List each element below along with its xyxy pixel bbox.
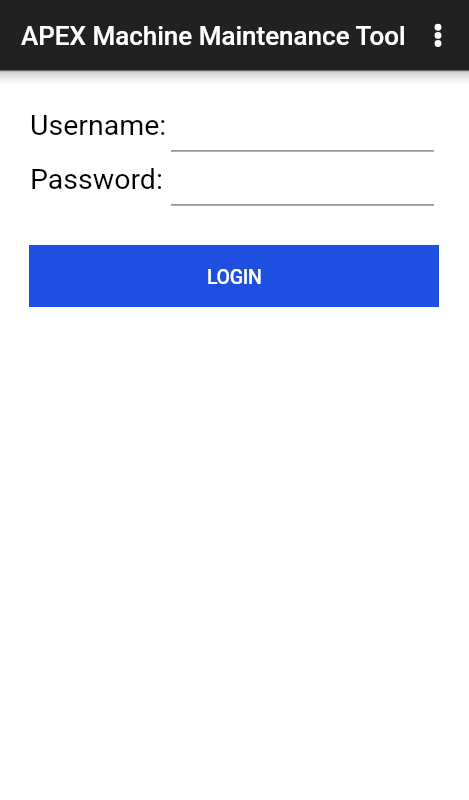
staticText: Username: [30, 109, 167, 142]
button[interactable]: Username input [171, 112, 434, 154]
button[interactable]: More options [415, 7, 461, 63]
staticText: APEX Machine Maintenance Tool [21, 21, 406, 51]
button[interactable]: Password input [171, 166, 434, 208]
button[interactable]: LOGIN [29, 245, 439, 307]
staticText: Password: [30, 163, 163, 196]
staticText: LOGIN [207, 266, 262, 289]
